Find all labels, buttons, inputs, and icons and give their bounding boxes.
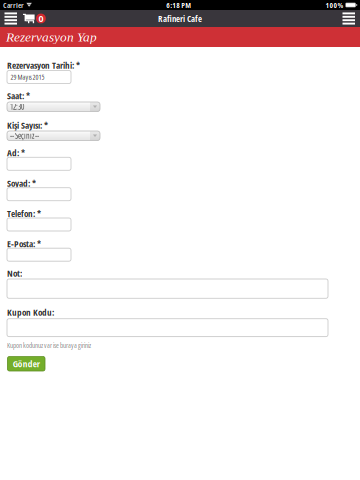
staticText: 12:30 bbox=[10, 101, 24, 112]
staticText: Kişi Sayısı: * bbox=[7, 119, 48, 131]
staticText: Saat: * bbox=[7, 89, 30, 102]
staticText: 0 bbox=[38, 12, 43, 24]
staticText: E-Posta: * bbox=[7, 237, 41, 250]
staticText: Gönder bbox=[13, 357, 40, 370]
staticText: Not: bbox=[7, 267, 22, 279]
button[interactable]: Shopping cart, 0 items bbox=[23, 10, 46, 27]
staticText: Rafineri Cafe bbox=[158, 12, 202, 24]
staticText: Ad: * bbox=[7, 146, 25, 159]
staticText: Rezervasyon Yap bbox=[6, 30, 97, 44]
staticText: 100% bbox=[326, 0, 344, 10]
staticText: 29 Mayıs 2015 bbox=[10, 72, 44, 82]
staticText: Carrier bbox=[3, 0, 24, 10]
button[interactable]: Sidebar menu bbox=[336, 10, 360, 27]
staticText: Rezervasyon Tarihi: * bbox=[7, 59, 80, 71]
staticText: Telefon: * bbox=[7, 207, 41, 220]
staticText: Soyad: * bbox=[7, 177, 36, 189]
staticText: Kupon kodunuz var ise buraya giriniz bbox=[7, 340, 91, 350]
button[interactable]: Menu bbox=[0, 10, 23, 27]
staticText: Kupon Kodu: bbox=[7, 306, 54, 318]
staticText: 6:18 PM bbox=[166, 0, 191, 10]
button[interactable]: Gönder bbox=[7, 356, 45, 371]
staticText: -- Seçiniz -- bbox=[10, 130, 39, 141]
